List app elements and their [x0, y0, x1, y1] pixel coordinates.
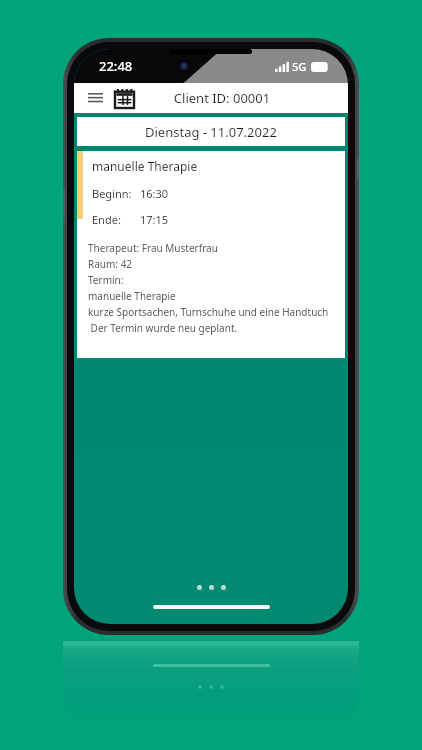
- staticText: 16:30: [140, 186, 169, 201]
- staticText: kurze Sportsachen, Turnschuhe und eine H…: [88, 305, 329, 319]
- staticText: 22:48: [99, 57, 133, 75]
- staticText: Therapeut: Frau Musterfrau: [88, 241, 218, 255]
- staticText: 17:15: [140, 212, 169, 227]
- button[interactable]: Menu: [84, 87, 106, 109]
- staticText: Raum: 42: [88, 257, 133, 271]
- staticText: Dienstag - 11.07.2022: [145, 123, 277, 141]
- staticText: Beginn:: [92, 186, 140, 201]
- staticText: Termin:: [88, 273, 124, 287]
- staticText: 5G: [292, 59, 307, 74]
- button[interactable]: manuelle Therapie: [77, 151, 345, 358]
- staticText: Client ID: 00001: [136, 89, 308, 107]
- staticText: Der Termin wurde neu geplant.: [88, 321, 238, 335]
- button[interactable]: Calendar: [112, 86, 136, 110]
- staticText: manuelle Therapie: [92, 158, 198, 174]
- button[interactable]: Dienstag - 11.07.2022: [77, 117, 345, 146]
- staticText: manuelle Therapie: [88, 289, 176, 303]
- staticText: Ende:: [92, 212, 140, 227]
